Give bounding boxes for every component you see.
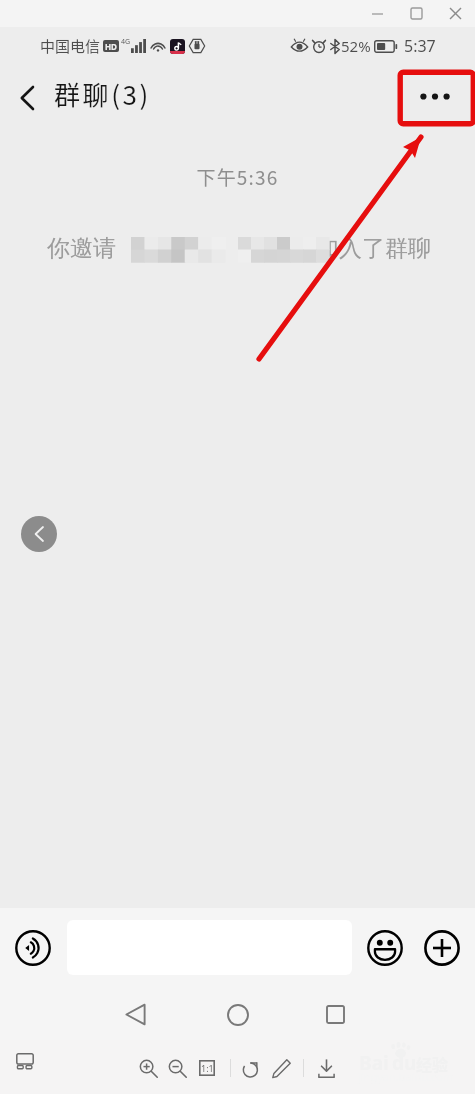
staticText: 你邀请 [47, 234, 116, 263]
staticText: 5:37 [404, 35, 436, 57]
button[interactable]: Voice message [11, 926, 55, 970]
button[interactable]: Edit [266, 1053, 296, 1083]
button[interactable]: More options [410, 71, 460, 123]
button[interactable]: Rotate [236, 1053, 266, 1083]
button[interactable]: Maximize [397, 0, 436, 27]
button[interactable]: Slideshow [9, 1045, 41, 1077]
staticText: 52% [341, 36, 371, 56]
button[interactable]: Emoji [363, 926, 407, 970]
button[interactable]: Zoom in [133, 1053, 163, 1083]
staticText: HD [105, 41, 117, 52]
button[interactable]: More functions [420, 926, 464, 970]
button[interactable]: Home [215, 992, 260, 1037]
staticText: 群聊(3) [54, 75, 152, 113]
staticText: 中国电信 [40, 35, 101, 57]
button[interactable]: Minimize [358, 0, 397, 27]
button[interactable]: Actual size [192, 1053, 222, 1083]
button[interactable]: Zoom out [162, 1053, 192, 1083]
button[interactable]: Back [113, 992, 158, 1037]
button[interactable]: Recent apps [313, 992, 358, 1037]
button[interactable]: Close [436, 0, 475, 27]
staticText: 下午5:36 [0, 163, 475, 191]
staticText: 1:1 [201, 1062, 214, 1074]
button[interactable]: Return to previous app [21, 516, 57, 552]
button[interactable]: Download [311, 1053, 341, 1083]
staticText: 4G [121, 37, 131, 47]
button[interactable]: Back [0, 65, 54, 130]
staticText: 加入了群聊 [316, 234, 431, 263]
